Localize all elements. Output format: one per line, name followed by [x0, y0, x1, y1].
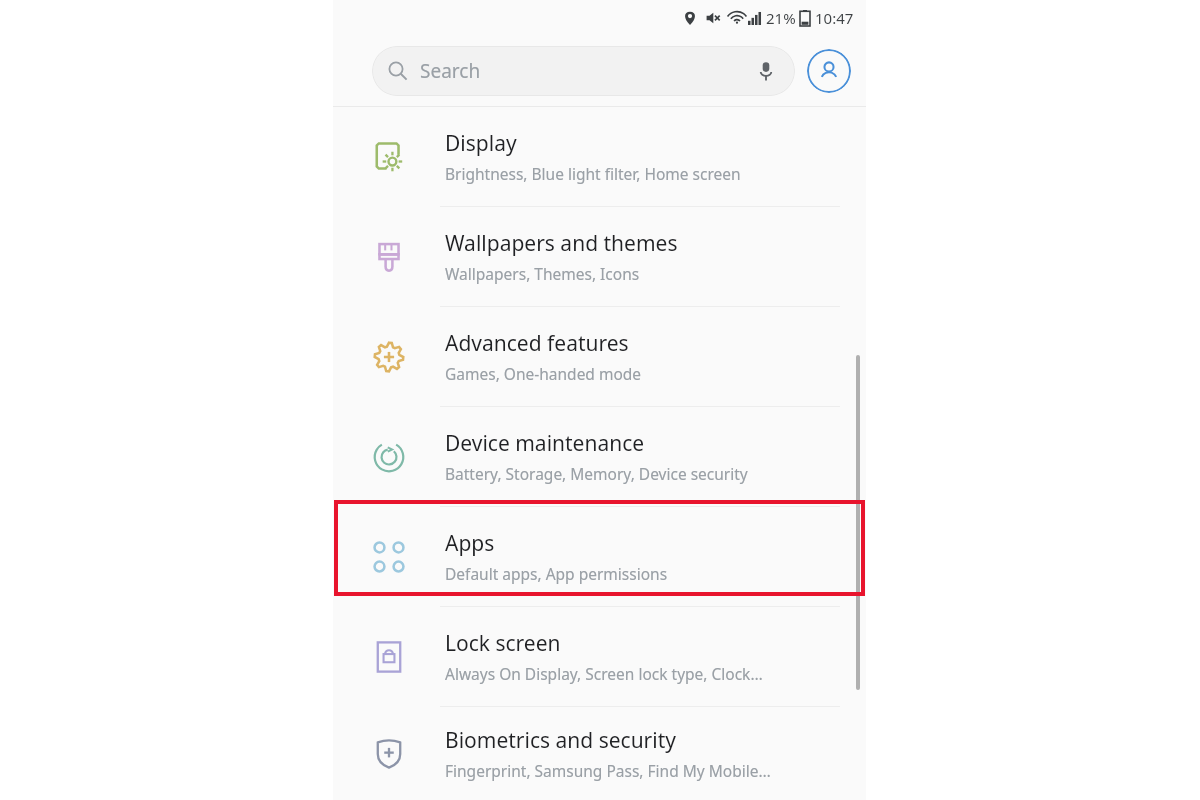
staticText: Search: [420, 58, 753, 84]
button[interactable]: Voice search: [753, 58, 779, 84]
staticText: Wallpapers, Themes, Icons: [445, 263, 640, 284]
button[interactable]: Device maintenance: [333, 407, 866, 507]
staticText: Advanced features: [445, 329, 629, 358]
staticText: Lock screen: [445, 629, 561, 658]
button[interactable]: Advanced features: [333, 307, 866, 407]
staticText: Battery, Storage, Memory, Device securit…: [445, 463, 748, 484]
staticText: Brightness, Blue light filter, Home scre…: [445, 163, 741, 184]
button[interactable]: Account: [807, 49, 851, 93]
button[interactable]: Search: [372, 46, 795, 96]
staticText: Always On Display, Screen lock type, Clo…: [445, 663, 763, 684]
staticText: Apps: [445, 529, 495, 558]
staticText: Display: [445, 129, 517, 158]
staticText: 10:47: [815, 8, 854, 28]
button[interactable]: Display: [333, 107, 866, 207]
staticText: Games, One-handed mode: [445, 363, 642, 384]
staticText: Default apps, App permissions: [445, 563, 668, 584]
staticText: Wallpapers and themes: [445, 229, 678, 258]
staticText: Fingerprint, Samsung Pass, Find My Mobil…: [445, 760, 771, 781]
staticText: 21%: [766, 8, 796, 28]
staticText: Device maintenance: [445, 429, 645, 458]
button[interactable]: Lock screen: [333, 607, 866, 707]
staticText: Biometrics and security: [445, 726, 676, 755]
button[interactable]: Biometrics and security: [333, 707, 866, 800]
button[interactable]: Apps: [333, 507, 866, 607]
button[interactable]: Wallpapers and themes: [333, 207, 866, 307]
